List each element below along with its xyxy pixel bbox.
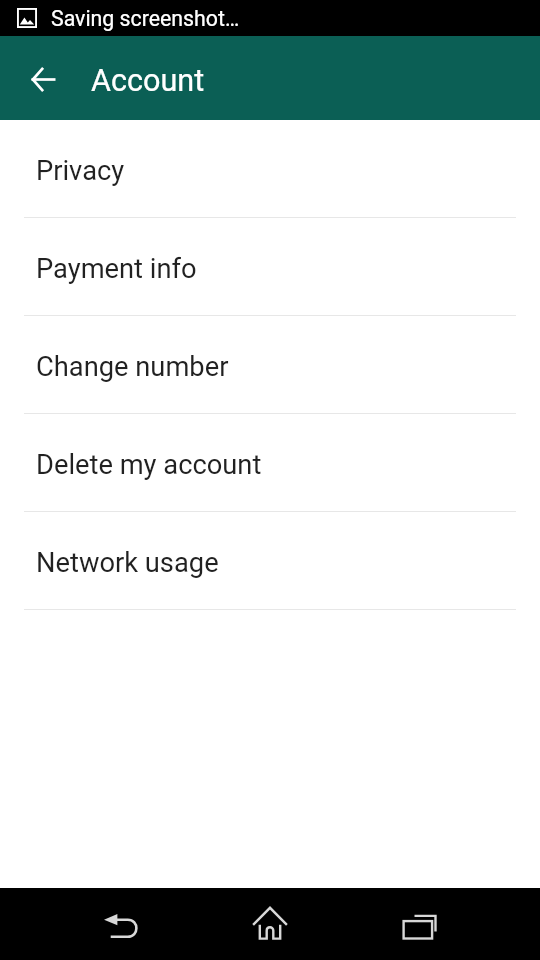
staticText: Account	[91, 63, 205, 99]
button[interactable]: Delete my account	[0, 414, 540, 512]
staticText: Delete my account	[36, 449, 262, 481]
staticText: Privacy	[36, 155, 125, 187]
staticText: Payment info	[36, 253, 197, 285]
button[interactable]: Privacy	[0, 120, 540, 218]
button[interactable]: Payment info	[0, 218, 540, 316]
button[interactable]: Network usage	[0, 512, 540, 610]
button[interactable]: Recent apps	[384, 891, 456, 960]
button[interactable]: Home	[234, 891, 306, 960]
staticText: Change number	[36, 351, 229, 383]
staticText: Network usage	[36, 547, 219, 579]
staticText: Saving screenshot…	[51, 6, 240, 31]
button[interactable]: Navigate up	[16, 50, 72, 106]
button[interactable]: Change number	[0, 316, 540, 414]
button[interactable]: Back	[84, 891, 156, 960]
